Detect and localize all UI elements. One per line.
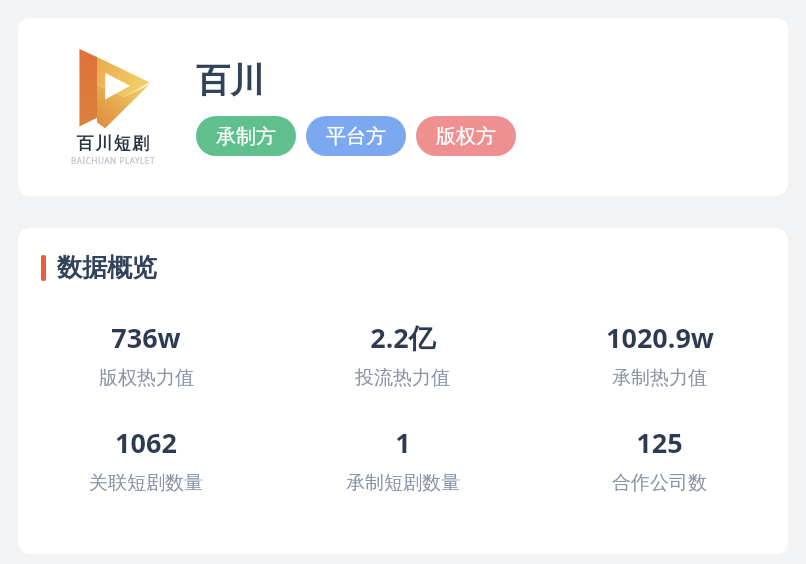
staticText: 版权热力值 bbox=[99, 366, 194, 390]
staticText: 2.2亿 bbox=[370, 319, 436, 356]
button[interactable]: 1062 bbox=[18, 424, 274, 495]
button[interactable]: 平台方 bbox=[306, 116, 406, 156]
staticText: 平台方 bbox=[326, 124, 386, 149]
staticText: 1062 bbox=[115, 424, 177, 461]
staticText: 承制短剧数量 bbox=[346, 471, 460, 495]
button[interactable]: 2.2亿 bbox=[274, 319, 531, 390]
button[interactable]: 125 bbox=[531, 424, 788, 495]
button[interactable]: 百川短剧 logo bbox=[18, 18, 788, 196]
button[interactable]: 1020.9w bbox=[531, 319, 788, 390]
staticText: 125 bbox=[636, 424, 683, 461]
staticText: 合作公司数 bbox=[612, 471, 707, 495]
staticText: 百川 bbox=[196, 59, 264, 102]
button[interactable]: 736w bbox=[18, 319, 274, 390]
staticText: 版权方 bbox=[436, 124, 496, 149]
staticText: 数据概览 bbox=[57, 252, 157, 283]
other: 百川短剧 logo bbox=[62, 49, 164, 166]
staticText: 736w bbox=[111, 319, 181, 356]
staticText: 百川短剧 bbox=[76, 133, 150, 154]
button[interactable]: 版权方 bbox=[416, 116, 516, 156]
button[interactable]: 1 bbox=[274, 424, 531, 495]
staticText: 关联短剧数量 bbox=[89, 471, 203, 495]
staticText: 投流热力值 bbox=[355, 366, 450, 390]
staticText: 1 bbox=[395, 424, 411, 461]
staticText: 承制方 bbox=[216, 124, 276, 149]
staticText: BAICHUAN PLAYLET bbox=[71, 155, 155, 166]
staticText: 承制热力值 bbox=[612, 366, 707, 390]
button[interactable]: 承制方 bbox=[196, 116, 296, 156]
staticText: 1020.9w bbox=[606, 319, 714, 356]
